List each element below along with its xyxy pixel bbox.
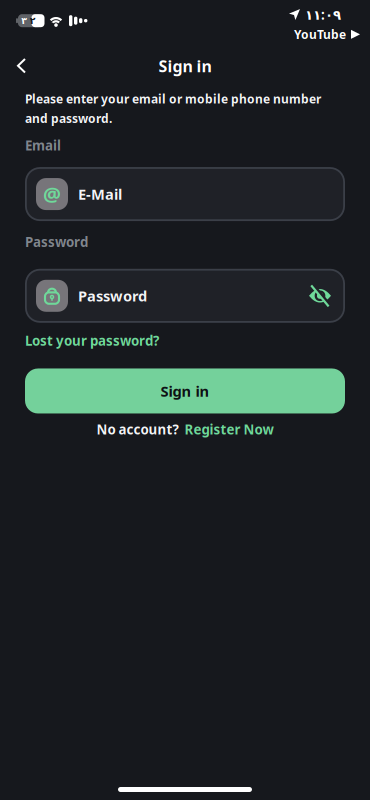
staticText: Sign in: [160, 381, 209, 401]
staticText: Email: [25, 136, 61, 154]
staticText: Register Now: [184, 420, 273, 438]
button[interactable]: Sign in: [25, 368, 345, 413]
button[interactable]: Back: [0, 47, 26, 85]
staticText: @: [43, 181, 61, 207]
staticText: E-Mail: [78, 184, 122, 204]
staticText: Password: [78, 286, 147, 305]
button[interactable]: E-Mail: [25, 167, 345, 221]
button[interactable]: Password: [25, 269, 345, 323]
button[interactable]: Show password: [309, 288, 331, 304]
button[interactable]: Lost your password?: [25, 332, 159, 349]
staticText: No account?: [96, 420, 178, 438]
staticText: Password: [25, 233, 88, 251]
staticText: ۳: [21, 15, 27, 26]
staticText: ۱۱:۰۹: [305, 6, 341, 23]
button[interactable]: Register Now: [184, 420, 273, 438]
staticText: ۲: [30, 15, 36, 26]
staticText: Please enter your email or mobile phone …: [25, 91, 321, 126]
staticText: YouTube: [294, 26, 346, 42]
staticText: Sign in: [158, 55, 211, 77]
staticText: Lost your password?: [25, 332, 159, 349]
button[interactable]: YouTube: [294, 26, 360, 42]
